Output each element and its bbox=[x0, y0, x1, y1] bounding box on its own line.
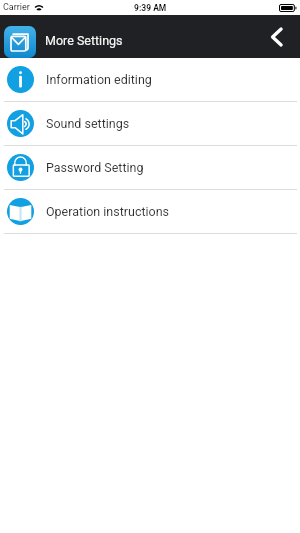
staticText: Operation instructions bbox=[46, 204, 170, 219]
button[interactable]: Mail bbox=[4, 26, 36, 58]
button[interactable]: Operation instructions bbox=[0, 190, 300, 234]
button[interactable]: Sound settings bbox=[0, 102, 300, 146]
staticText: More Settings bbox=[45, 33, 123, 48]
staticText: 9:39 AM bbox=[134, 3, 167, 13]
button[interactable]: Back bbox=[258, 16, 300, 58]
staticText: Carrier bbox=[3, 2, 30, 13]
button[interactable]: Information editing bbox=[0, 58, 300, 102]
staticText: Password Setting bbox=[46, 160, 144, 175]
staticText: Sound settings bbox=[46, 116, 130, 131]
staticText: Information editing bbox=[46, 72, 152, 87]
button[interactable]: Password Setting bbox=[0, 146, 300, 190]
